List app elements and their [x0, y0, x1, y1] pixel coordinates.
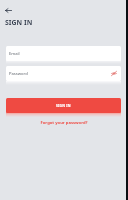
button[interactable]: Email: [6, 46, 121, 61]
staticText: SIGN IN: [5, 18, 33, 27]
button[interactable]: Password: [6, 66, 121, 81]
button[interactable]: Back: [3, 5, 14, 16]
staticText: Forgot your password?: [40, 120, 88, 126]
staticText: Password: [9, 71, 28, 77]
staticText: Email: [9, 51, 20, 57]
button[interactable]: Forgot your password?: [6, 118, 121, 128]
staticText: SIGN IN: [56, 103, 71, 108]
button[interactable]: SIGN IN: [6, 98, 121, 113]
button[interactable]: Show password: [109, 69, 118, 78]
